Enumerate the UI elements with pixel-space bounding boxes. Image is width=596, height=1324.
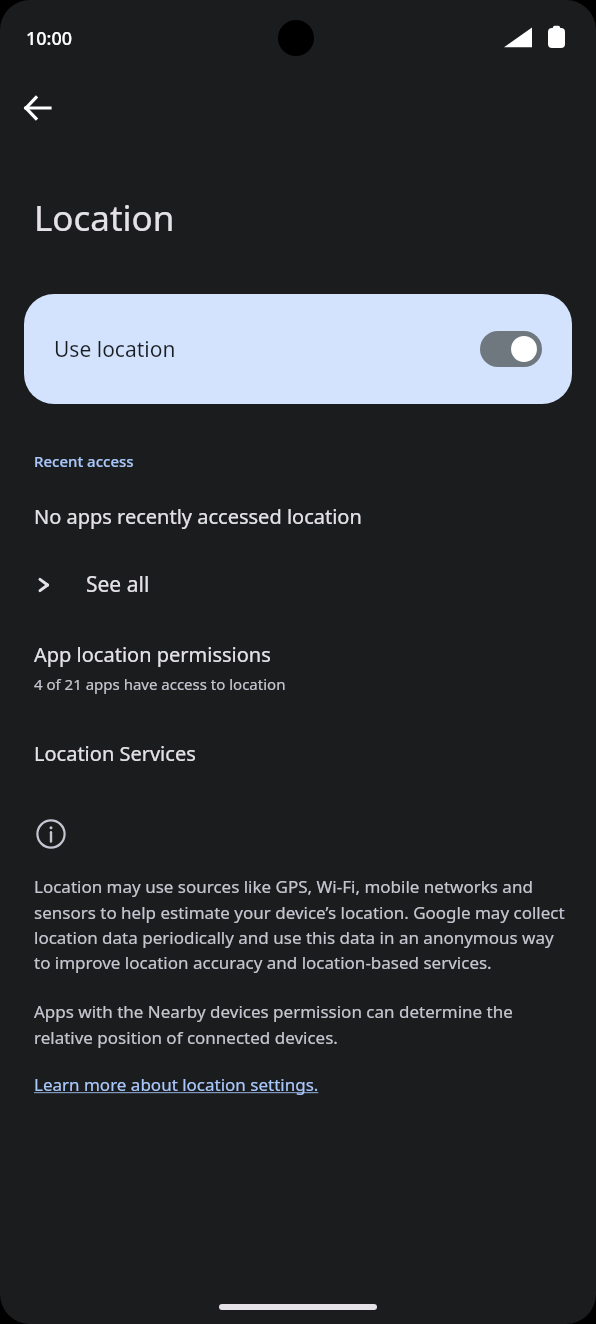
staticText: 4 of 21 apps have access to location xyxy=(34,674,286,694)
staticText: Location xyxy=(34,194,175,242)
button[interactable]: See all xyxy=(0,560,596,609)
staticText: See all xyxy=(86,570,150,599)
button[interactable]: Back xyxy=(10,80,66,136)
staticText: Use location xyxy=(54,335,480,364)
staticText: Recent access xyxy=(34,451,134,471)
button[interactable]: App location permissions xyxy=(0,637,596,698)
staticText: Location may use sources like GPS, Wi-Fi… xyxy=(34,875,574,974)
staticText: 10:00 xyxy=(26,26,73,51)
button[interactable]: Use location xyxy=(24,294,572,404)
staticText: App location permissions xyxy=(34,641,271,668)
button[interactable]: Learn more about location settings. xyxy=(0,1073,341,1096)
button[interactable]: Location Services xyxy=(0,736,596,771)
staticText: Apps with the Nearby devices permission … xyxy=(34,1000,574,1049)
staticText: No apps recently accessed location xyxy=(34,503,362,530)
